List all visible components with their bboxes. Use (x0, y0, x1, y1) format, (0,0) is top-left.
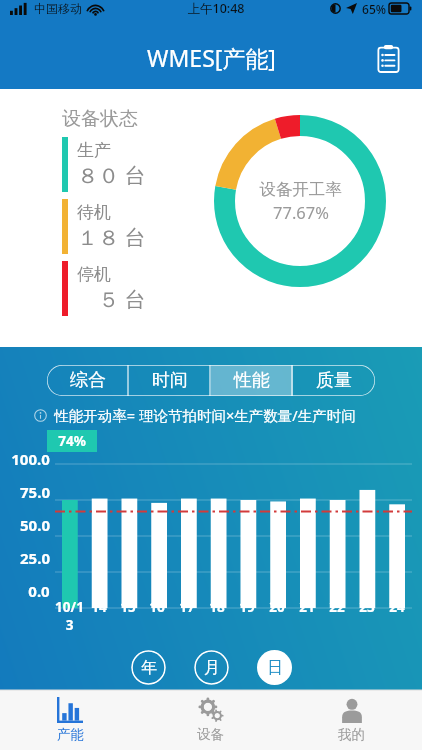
staticText: 设备开工率 (259, 179, 342, 200)
staticText: 23 (359, 598, 375, 616)
staticText: 日 (267, 658, 283, 678)
staticText: 上午10:48 (187, 0, 245, 17)
staticText: 24 (389, 598, 405, 616)
button[interactable]: 日 (257, 650, 292, 685)
staticText: 19 (239, 598, 255, 616)
staticText: 14 (91, 598, 107, 616)
staticText: 中国移动 (34, 1, 82, 16)
button[interactable]: 我的 (281, 690, 422, 750)
staticText: 设备状态 (62, 107, 138, 131)
button[interactable]: 设备 (140, 690, 281, 750)
staticText: 性能 (234, 369, 270, 392)
staticText: 设备 (197, 726, 224, 743)
staticText: ８０ 台 (77, 161, 146, 190)
staticText: ５ 台 (77, 285, 146, 314)
button[interactable]: 时间 (129, 365, 211, 396)
staticText: １８ 台 (77, 223, 146, 252)
staticText: 22 (329, 598, 345, 616)
staticText: 75.0 (20, 482, 50, 502)
button[interactable]: 月 (194, 650, 229, 685)
button[interactable]: 年 (131, 650, 166, 685)
staticText: 性能开动率= 理论节拍时间×生产数量/生产时间 (54, 405, 356, 425)
staticText: 停机 (77, 264, 111, 285)
staticText: 产能 (57, 726, 84, 743)
staticText: 待机 (77, 202, 111, 223)
button[interactable]: 性能 (211, 365, 293, 396)
button[interactable]: Reports (368, 38, 408, 78)
staticText: 质量 (316, 369, 352, 392)
staticText: 月 (204, 658, 220, 678)
staticText: 我的 (338, 726, 365, 743)
button[interactable]: 综合 (47, 365, 129, 396)
button[interactable]: 产能 (0, 690, 140, 750)
button[interactable]: 质量 (293, 365, 375, 396)
staticText: 年 (141, 658, 157, 678)
staticText: 20 (269, 598, 285, 616)
staticText: 65% (362, 1, 386, 17)
staticText: 10/13 (55, 598, 84, 634)
staticText: 0.0 (28, 581, 50, 601)
staticText: 15 (120, 598, 136, 616)
staticText: 16 (149, 598, 165, 616)
staticText: 74% (58, 432, 86, 450)
staticText: 时间 (152, 369, 188, 392)
staticText: 100.0 (11, 449, 50, 469)
staticText: 50.0 (20, 515, 50, 535)
staticText: WMES[产能] (147, 42, 276, 73)
staticText: 综合 (70, 369, 106, 392)
staticText: 18 (209, 598, 225, 616)
staticText: 21 (299, 598, 315, 616)
staticText: 17 (179, 598, 195, 616)
staticText: 25.0 (20, 548, 50, 568)
staticText: 77.67% (273, 201, 329, 223)
staticText: 生产 (77, 140, 111, 161)
